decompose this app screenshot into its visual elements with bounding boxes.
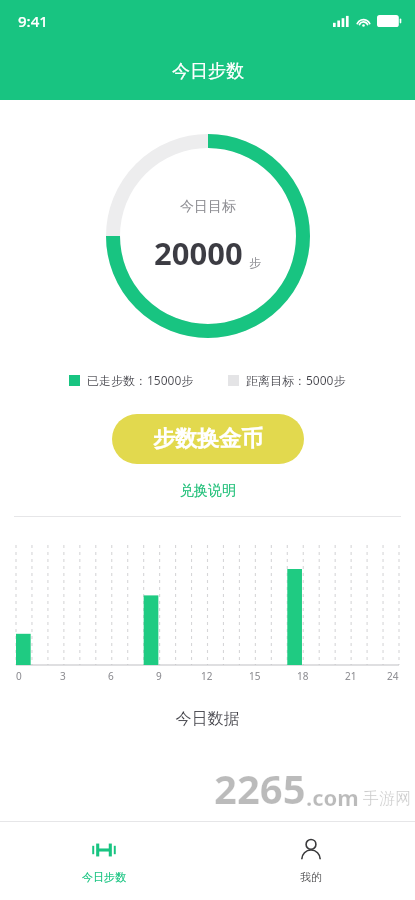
staticText: 今日目标 (180, 198, 236, 216)
staticText: 已走步数：15000步 (87, 372, 194, 388)
staticText: 21 (345, 669, 357, 683)
staticText: 步数换金币 (153, 425, 263, 453)
staticText: 18 (297, 669, 309, 683)
staticText: 6 (108, 669, 114, 683)
button[interactable]: 我的 (207, 822, 415, 900)
staticText: 今日步数 (82, 870, 126, 884)
staticText: 3 (60, 669, 66, 683)
staticText: 9 (156, 669, 162, 683)
button[interactable]: 今日步数 (0, 822, 207, 900)
staticText: 15 (249, 669, 261, 683)
staticText: 今日步数 (172, 60, 244, 83)
staticText: .com (306, 782, 359, 812)
staticText: 20000 (154, 232, 243, 274)
staticText: 9:41 (18, 11, 48, 31)
other: 今日步数 (90, 836, 118, 864)
staticText: 兑换说明 (180, 482, 236, 500)
staticText: 12 (201, 669, 213, 683)
staticText: 步 (249, 255, 261, 270)
staticText: 距离目标：5000步 (246, 372, 346, 388)
other: 我的 (297, 836, 325, 864)
staticText: 我的 (300, 870, 322, 884)
button[interactable]: 步数换金币 (112, 414, 304, 464)
staticText: 今日数据 (0, 709, 415, 729)
staticText: 0 (16, 669, 22, 683)
staticText: 2265 (214, 761, 306, 815)
staticText: 24 (387, 669, 399, 683)
staticText: 手游网 (363, 789, 411, 809)
button[interactable]: 兑换说明 (174, 476, 242, 506)
